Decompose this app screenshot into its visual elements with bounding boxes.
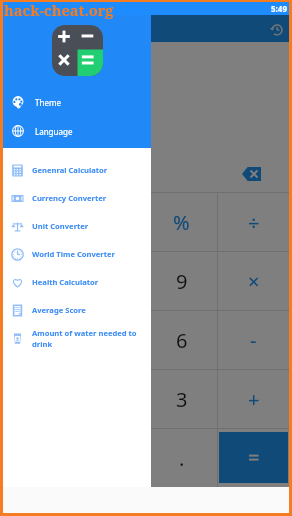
button[interactable]: × (218, 252, 289, 310)
staticText: - (250, 327, 257, 354)
staticText: % (173, 209, 190, 236)
button[interactable]: C (3, 193, 74, 251)
button[interactable]: 9 (146, 252, 217, 310)
staticText: World Time Converter (32, 249, 115, 259)
button[interactable]: Backspace (242, 167, 261, 181)
button[interactable]: 3 (146, 370, 217, 428)
staticText: . (179, 445, 185, 472)
staticText: Genenral Calculator (32, 165, 108, 175)
button[interactable]: Genenral Calculator (3, 156, 151, 184)
staticText: ÷ (248, 209, 260, 236)
staticText: 9 (176, 268, 188, 295)
staticText: Currency Converter (32, 193, 107, 203)
button[interactable]: - (218, 311, 289, 369)
staticText: Theme (35, 97, 61, 108)
button[interactable]: = (218, 429, 289, 487)
button[interactable]: Amount of water needed to drink (3, 324, 151, 352)
button[interactable]: 5 (75, 311, 145, 369)
staticText: 5:49 (271, 3, 287, 14)
staticText: Health Calculator (32, 277, 99, 287)
button[interactable]: ÷ (218, 193, 289, 251)
staticText: 7 (33, 268, 45, 295)
staticText: C (32, 209, 45, 236)
staticText: 6 (176, 327, 188, 354)
staticText: Amount of water needed to drink (32, 328, 137, 349)
button[interactable]: 8 (75, 252, 145, 310)
staticText: × (248, 268, 260, 295)
button[interactable]: Health Calculator (3, 268, 151, 296)
staticText: 4 (33, 327, 45, 354)
staticText: hack-cheat.org (4, 0, 114, 20)
staticText: 5 (104, 327, 116, 354)
button[interactable]: 7 (3, 252, 74, 310)
button[interactable]: Language (3, 121, 151, 141)
button[interactable]: World Time Converter (3, 240, 151, 268)
button[interactable]: 4 (3, 311, 74, 369)
staticText: Unit Converter (32, 221, 89, 231)
button[interactable]: Average Score (3, 296, 151, 324)
button[interactable]: Unit Converter (3, 212, 151, 240)
button[interactable]: + (218, 370, 289, 428)
staticText: 3 (176, 386, 188, 413)
button[interactable]: Theme (3, 92, 151, 112)
button[interactable]: 6 (146, 311, 217, 369)
button[interactable]: ( ) (75, 193, 145, 251)
staticText: Language (35, 126, 73, 137)
button[interactable]: . (146, 429, 217, 487)
button[interactable]: Currency Converter (3, 184, 151, 212)
staticText: Average Score (32, 305, 86, 315)
button[interactable]: History (265, 18, 287, 40)
staticText: + (248, 386, 260, 413)
button[interactable]: % (146, 193, 217, 251)
staticText: = (248, 444, 260, 471)
